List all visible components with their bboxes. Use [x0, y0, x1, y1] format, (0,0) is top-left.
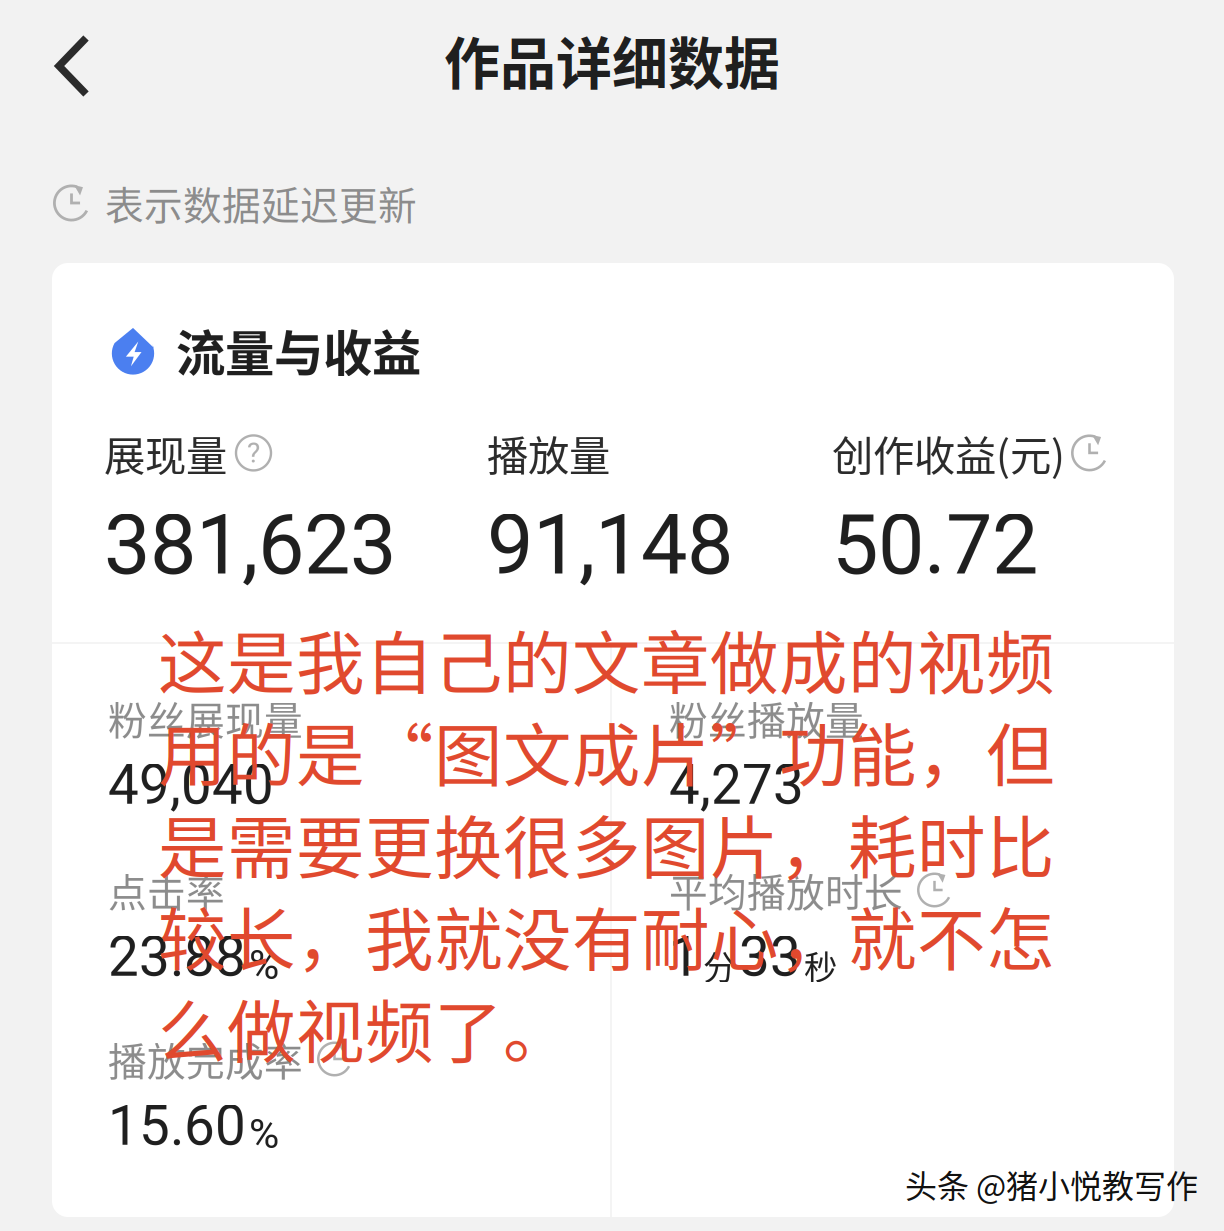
staticText: 是需要更换很多图片，耗时比	[158, 793, 1055, 893]
button[interactable]: 返回	[39, 18, 106, 114]
staticText: 流量与收益	[176, 314, 421, 385]
button[interactable]: 创作收益(元)	[832, 423, 1172, 594]
button[interactable]: 点击率	[52, 862, 613, 1054]
staticText: 创作收益(元)	[832, 423, 1065, 483]
staticText: 23.88	[108, 925, 246, 989]
staticText: 50.72	[832, 497, 1038, 594]
staticText: 表示数据延迟更新	[105, 175, 417, 231]
button[interactable]: 表示数据延迟更新	[53, 175, 417, 231]
button[interactable]: 播放完成率	[52, 1031, 613, 1223]
button[interactable]: 播放完成率数据延迟更新	[317, 1041, 352, 1076]
staticText: 粉丝播放量	[669, 690, 864, 746]
staticText: ?	[247, 436, 260, 469]
staticText: 秒	[804, 941, 837, 989]
staticText: 用的是“图文成片”功能，但	[158, 701, 1055, 800]
staticText: 较长，我就没有耐心，就不怎	[158, 886, 1055, 985]
staticText: 这是我自己的文章做成的视频	[158, 609, 1055, 708]
staticText: 分	[703, 941, 736, 989]
staticText: 播放完成率	[108, 1031, 303, 1087]
staticText: 4,273	[669, 753, 804, 817]
staticText: %	[249, 941, 279, 989]
staticText: 1	[669, 925, 700, 989]
staticText: 头条 @猪小悦教写作	[905, 1161, 1198, 1207]
button[interactable]: 平均播放时长数据延迟更新	[917, 872, 952, 907]
button[interactable]: 平均播放时长	[613, 862, 1174, 1054]
staticText: 49,040	[108, 753, 274, 817]
staticText: 点击率	[108, 862, 225, 918]
staticText: 15.60	[108, 1094, 246, 1158]
staticText: 33	[739, 925, 801, 989]
staticText: 91,148	[487, 497, 733, 594]
button[interactable]: 粉丝播放量	[613, 690, 1174, 882]
staticText: 粉丝展现量	[108, 690, 303, 746]
staticText: 展现量	[104, 423, 227, 483]
staticText: 作品详细数据	[444, 19, 780, 100]
button[interactable]: 播放量	[487, 423, 832, 594]
staticText: 381,623	[104, 497, 396, 594]
button[interactable]: 创作收益(元)数据延迟更新	[1071, 434, 1108, 471]
staticText: 播放量	[487, 423, 610, 483]
staticText: 么做视频了。	[158, 978, 572, 1077]
button[interactable]: 展现量说明	[236, 435, 271, 470]
staticText: 平均播放时长	[669, 862, 903, 918]
button[interactable]: 展现量	[104, 423, 487, 594]
button[interactable]: 粉丝展现量	[52, 690, 613, 882]
staticText: %	[249, 1110, 279, 1158]
